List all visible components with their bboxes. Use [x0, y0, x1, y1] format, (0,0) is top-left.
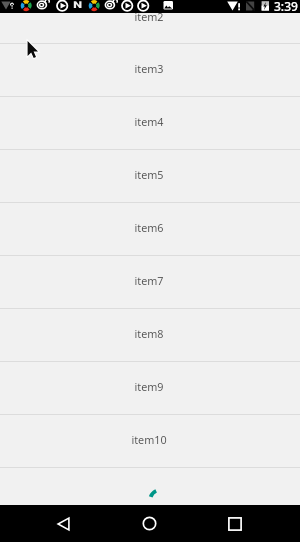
button[interactable]: item10 [0, 415, 300, 468]
staticText: item5 [134, 167, 164, 182]
staticText: item9 [134, 379, 164, 394]
button[interactable]: item9 [0, 362, 300, 415]
button[interactable]: item2 [0, 0, 300, 44]
staticText: item6 [134, 220, 164, 235]
button[interactable]: item8 [0, 309, 300, 362]
staticText: item10 [131, 432, 167, 447]
button[interactable]: Recent apps [192, 505, 278, 542]
staticText: item8 [134, 326, 164, 341]
button[interactable]: Home [106, 505, 192, 542]
staticText: item2 [134, 9, 164, 24]
staticText: item7 [134, 273, 164, 288]
staticText: item4 [134, 114, 164, 129]
button[interactable]: item7 [0, 256, 300, 309]
button[interactable]: item3 [0, 44, 300, 97]
button[interactable]: Back [20, 505, 106, 542]
staticText: item3 [134, 61, 164, 76]
button[interactable]: item5 [0, 150, 300, 203]
button[interactable]: item6 [0, 203, 300, 256]
button[interactable]: item4 [0, 97, 300, 150]
staticText: 3:39 [274, 0, 298, 11]
